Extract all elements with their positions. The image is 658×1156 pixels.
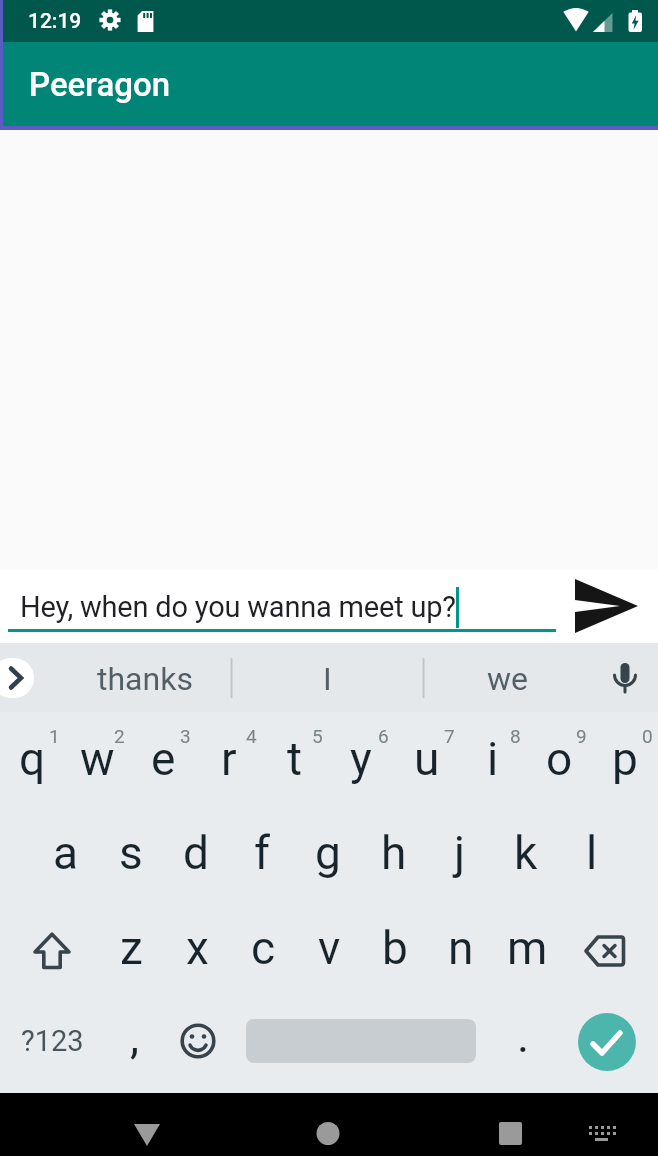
button[interactable]: , <box>105 998 165 1089</box>
staticText: g <box>315 826 341 880</box>
staticText: 1 <box>49 725 60 747</box>
staticText: h <box>381 826 407 880</box>
button[interactable]: we <box>420 643 596 712</box>
staticText: 6 <box>378 725 389 747</box>
button[interactable]: q <box>0 715 65 809</box>
button[interactable]: n <box>428 904 494 998</box>
button[interactable] <box>560 904 658 998</box>
staticText: we <box>487 660 529 698</box>
staticText: 12:19 <box>28 9 82 34</box>
staticText: 2 <box>114 725 125 747</box>
staticText: x <box>186 921 209 975</box>
staticText: 9 <box>576 725 587 747</box>
button[interactable]: . <box>492 998 555 1089</box>
button[interactable]: s <box>98 809 163 904</box>
staticText: u <box>414 732 440 786</box>
staticText: ?123 <box>21 1024 84 1058</box>
staticText: 8 <box>510 725 521 747</box>
button[interactable]: h <box>361 809 427 904</box>
staticText: m <box>507 921 548 975</box>
button[interactable]: o <box>526 715 592 809</box>
staticText: I <box>323 660 332 698</box>
button[interactable]: i <box>460 715 526 809</box>
button[interactable]: thanks <box>52 643 237 712</box>
staticText: 7 <box>444 725 455 747</box>
button[interactable]: z <box>98 904 164 998</box>
staticText: c <box>251 921 276 975</box>
staticText: j <box>454 826 466 880</box>
button[interactable] <box>293 1093 363 1156</box>
button[interactable] <box>0 904 98 998</box>
staticText: a <box>53 826 79 880</box>
staticText: 5 <box>312 725 323 747</box>
button[interactable]: m <box>494 904 560 998</box>
staticText: o <box>546 732 573 786</box>
button[interactable] <box>578 1093 624 1156</box>
staticText: y <box>350 732 372 786</box>
staticText: v <box>318 921 341 975</box>
button[interactable]: f <box>229 809 295 904</box>
staticText: , <box>130 1010 140 1064</box>
button[interactable] <box>574 570 658 643</box>
staticText: Hey, when do you wanna meet up? <box>20 590 456 624</box>
staticText: z <box>120 921 143 975</box>
button[interactable]: w <box>65 715 130 809</box>
button[interactable]: y <box>328 715 394 809</box>
button[interactable] <box>0 658 34 698</box>
staticText: s <box>119 826 143 880</box>
button[interactable]: t <box>262 715 328 809</box>
staticText: i <box>487 732 499 786</box>
staticText: 3 <box>180 725 191 747</box>
staticText: thanks <box>97 660 193 698</box>
button[interactable]: e <box>130 715 196 809</box>
staticText: p <box>612 732 638 786</box>
staticText: q <box>19 732 46 786</box>
button[interactable]: l <box>559 809 625 904</box>
button[interactable]: k <box>493 809 559 904</box>
button[interactable]: u <box>394 715 460 809</box>
staticText: . <box>517 1009 530 1063</box>
button[interactable] <box>600 643 652 712</box>
button[interactable] <box>112 1093 182 1156</box>
button[interactable]: v <box>296 904 362 998</box>
staticText: d <box>183 826 209 880</box>
staticText: f <box>254 826 270 880</box>
button[interactable]: I <box>232 643 422 712</box>
staticText: Peeragon <box>29 65 171 104</box>
staticText: w <box>80 732 115 786</box>
button[interactable]: d <box>163 809 229 904</box>
button[interactable]: r <box>196 715 262 809</box>
button[interactable]: g <box>295 809 361 904</box>
button[interactable]: b <box>362 904 428 998</box>
button[interactable] <box>555 998 658 1089</box>
button[interactable] <box>165 998 230 1089</box>
staticText: k <box>514 826 538 880</box>
button[interactable]: j <box>427 809 493 904</box>
button[interactable] <box>578 1013 636 1071</box>
staticText: t <box>287 732 303 786</box>
staticText: 0 <box>642 725 653 747</box>
button[interactable]: c <box>230 904 296 998</box>
staticText: 4 <box>246 725 257 747</box>
button[interactable] <box>475 1093 545 1156</box>
button[interactable]: ?123 <box>0 998 105 1089</box>
button[interactable]: x <box>164 904 230 998</box>
staticText: n <box>448 921 474 975</box>
staticText: l <box>586 826 598 880</box>
staticText: r <box>221 732 237 786</box>
button[interactable]: a <box>33 809 98 904</box>
staticText: b <box>382 921 408 975</box>
staticText: e <box>151 732 176 786</box>
button[interactable]: p <box>592 715 658 809</box>
